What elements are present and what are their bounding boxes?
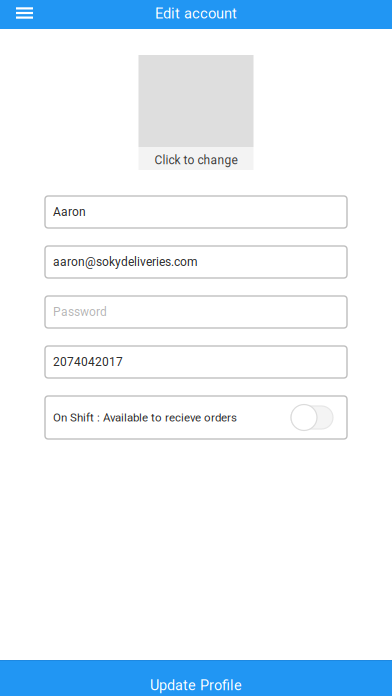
textField[interactable]: aaron@sokydeliveries.com [45,246,347,278]
button[interactable]: 2074042017 [45,346,347,378]
textField[interactable]: Aaron [45,196,347,228]
staticText: Update Profile [150,677,242,694]
staticText: Aaron [53,205,86,219]
staticText: On Shift : Available to recieve orders [53,411,237,424]
button[interactable]: aaron@sokydeliveries.com [45,246,347,278]
staticText: 2074042017 [53,355,123,369]
staticText: Click to change [154,153,237,167]
button[interactable]: Click to change [138,55,253,170]
button[interactable]: Menu [0,0,41,29]
staticText: Password [53,305,107,319]
staticText: Edit account [155,5,237,22]
textField[interactable]: Password [45,296,347,328]
button[interactable]: Password [45,296,347,328]
button[interactable]: Aaron [45,196,347,228]
button[interactable]: Update Profile [0,660,392,696]
staticText: aaron@sokydeliveries.com [53,255,198,269]
button[interactable]: On Shift : Available to recieve orders [45,396,347,439]
textField[interactable]: 2074042017 [45,346,347,378]
